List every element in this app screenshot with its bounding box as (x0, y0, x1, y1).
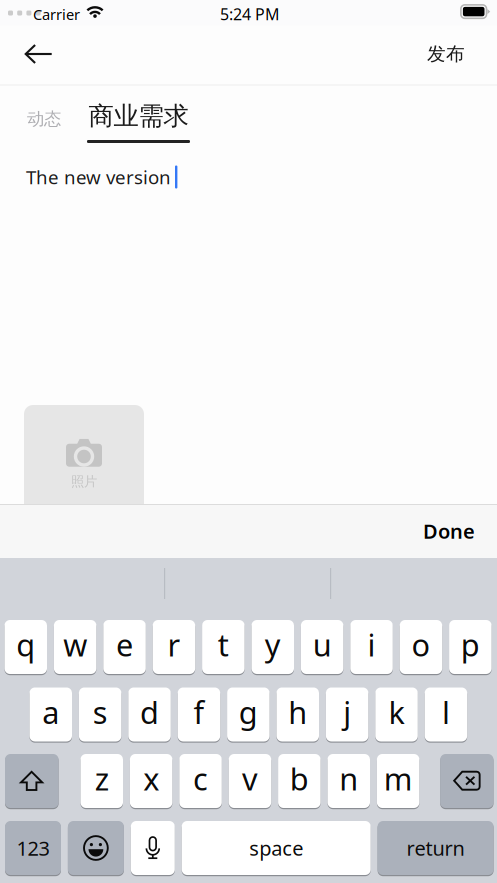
button[interactable]: m (377, 754, 419, 808)
staticText: g (239, 692, 258, 732)
button[interactable]: u (301, 620, 343, 674)
button[interactable]: o (400, 620, 442, 674)
button[interactable]: w (54, 620, 96, 674)
staticText: Done (423, 518, 475, 544)
staticText: o (411, 624, 430, 665)
button[interactable]: 123 (5, 821, 61, 875)
button[interactable]: Back (7, 30, 69, 78)
staticText: u (313, 624, 332, 665)
staticText: a (42, 692, 59, 732)
staticText: 5:24 PM (220, 3, 280, 25)
staticText: i (367, 624, 375, 665)
button[interactable]: d (128, 687, 171, 741)
staticText: 发布 (427, 42, 465, 65)
staticText: h (288, 692, 307, 732)
staticText: t (218, 624, 229, 665)
button[interactable]: Emoji (68, 821, 124, 875)
staticText: The new version (26, 165, 171, 189)
button[interactable]: z (80, 754, 123, 808)
staticText: p (461, 624, 480, 665)
button[interactable]: b (278, 754, 321, 808)
button[interactable]: f (178, 687, 220, 741)
staticText: f (193, 692, 204, 732)
staticText: 商业需求 (88, 100, 188, 131)
button[interactable]: p (449, 620, 492, 674)
button[interactable]: return (378, 821, 494, 875)
staticText: n (339, 758, 358, 799)
button[interactable]: 动态 (21, 99, 67, 139)
staticText: s (93, 692, 108, 732)
button[interactable]: s (79, 687, 121, 741)
button[interactable]: c (179, 754, 222, 808)
staticText: 照片 (71, 473, 97, 490)
button[interactable]: n (327, 754, 370, 808)
button[interactable]: v (229, 754, 271, 808)
button[interactable]: j (326, 687, 368, 741)
staticText: r (167, 624, 180, 665)
staticText: x (143, 758, 159, 799)
button[interactable]: g (227, 687, 270, 741)
staticText: 动态 (27, 108, 61, 130)
button[interactable]: 商业需求 (87, 98, 190, 144)
staticText: b (290, 758, 309, 799)
button[interactable]: Delete (440, 754, 493, 808)
staticText: 123 (16, 835, 49, 861)
button[interactable]: Dictation (131, 821, 175, 875)
staticText: m (384, 758, 413, 799)
staticText: q (16, 624, 35, 665)
button[interactable]: l (425, 687, 467, 741)
staticText: l (442, 692, 450, 732)
button[interactable]: Add photo (24, 405, 144, 525)
staticText: c (193, 758, 208, 799)
staticText: z (95, 758, 109, 799)
button[interactable]: i (350, 620, 393, 674)
staticText: d (140, 692, 159, 732)
button[interactable]: q (4, 620, 47, 674)
button[interactable]: y (251, 620, 294, 674)
button[interactable]: a (29, 687, 72, 741)
button[interactable]: k (375, 687, 418, 741)
button[interactable]: r (153, 620, 195, 674)
button[interactable]: 发布 (408, 30, 484, 78)
staticText: return (407, 835, 465, 861)
button[interactable]: space (182, 821, 371, 875)
staticText: e (116, 624, 133, 665)
staticText: j (343, 692, 351, 732)
staticText: v (242, 758, 258, 799)
button[interactable]: t (202, 620, 245, 674)
staticText: space (249, 835, 303, 861)
button[interactable]: x (130, 754, 172, 808)
button[interactable]: Done (401, 505, 497, 557)
staticText: w (63, 624, 87, 665)
button[interactable]: h (276, 687, 319, 741)
staticText: Carrier (33, 4, 80, 24)
staticText: k (388, 692, 404, 732)
button[interactable]: e (103, 620, 146, 674)
button[interactable]: Shift (5, 754, 59, 808)
staticText: y (265, 624, 281, 665)
